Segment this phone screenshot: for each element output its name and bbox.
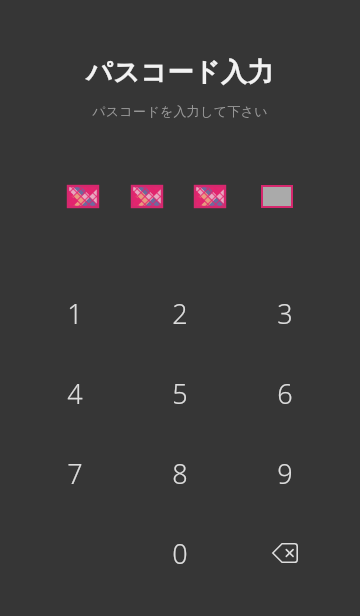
button[interactable]: 0 — [148, 521, 212, 585]
button[interactable]: Delete — [253, 521, 317, 585]
button[interactable]: 8 — [148, 441, 212, 505]
staticText: パスコード入力 — [0, 56, 360, 89]
staticText: 7 — [67, 455, 83, 492]
button[interactable]: 6 — [253, 361, 317, 425]
button[interactable]: 5 — [148, 361, 212, 425]
button[interactable]: 2 — [148, 281, 212, 345]
staticText: 2 — [172, 295, 188, 332]
staticText: 3 — [277, 295, 293, 332]
staticText: 5 — [172, 375, 188, 412]
staticText: 6 — [277, 375, 293, 412]
staticText: 1 — [67, 295, 83, 332]
staticText: 4 — [67, 375, 83, 412]
button[interactable]: 1 — [43, 281, 107, 345]
staticText: 8 — [172, 455, 188, 492]
staticText: 9 — [277, 455, 293, 492]
button[interactable]: 9 — [253, 441, 317, 505]
staticText: パスコードを入力して下さい — [0, 103, 360, 119]
button[interactable]: 7 — [43, 441, 107, 505]
staticText: 0 — [172, 535, 188, 572]
button[interactable]: 4 — [43, 361, 107, 425]
button[interactable]: 3 — [253, 281, 317, 345]
